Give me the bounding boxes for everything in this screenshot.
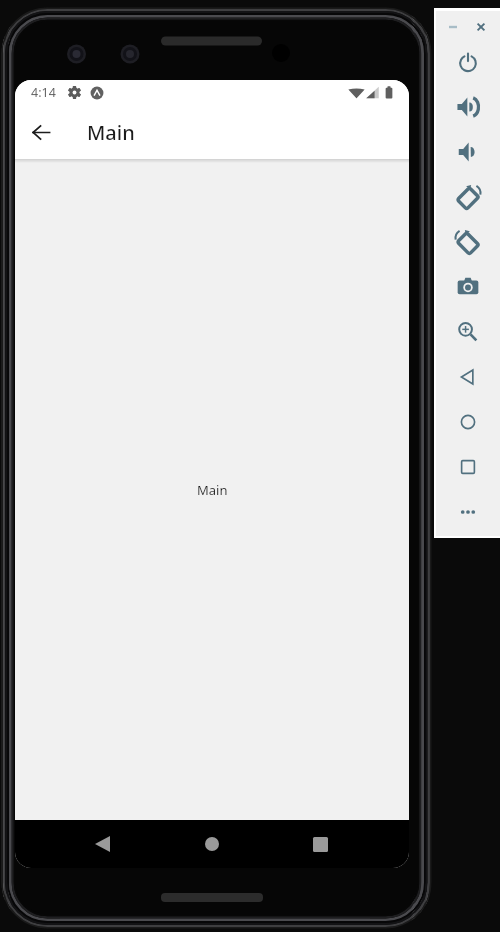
staticText: Main bbox=[87, 119, 135, 146]
button[interactable]: Rotate right bbox=[446, 220, 490, 264]
button[interactable]: Back bbox=[65, 820, 139, 868]
button[interactable]: Minimize bbox=[439, 13, 467, 41]
button[interactable]: Home bbox=[446, 400, 490, 444]
button[interactable]: Take screenshot bbox=[446, 265, 490, 309]
staticText: 4:14 bbox=[31, 84, 56, 101]
button[interactable]: Zoom bbox=[446, 310, 490, 354]
button[interactable]: Navigate up bbox=[23, 114, 60, 151]
button[interactable]: Power bbox=[446, 40, 490, 84]
button[interactable]: Volume down bbox=[446, 130, 490, 174]
button[interactable]: Rotate left bbox=[446, 175, 490, 219]
button[interactable]: Home bbox=[175, 820, 249, 868]
button[interactable]: Back bbox=[446, 355, 490, 399]
button[interactable]: More bbox=[446, 490, 490, 534]
staticText: Main bbox=[197, 481, 228, 499]
button[interactable]: Recent apps bbox=[283, 820, 357, 868]
button[interactable]: Volume up bbox=[446, 85, 490, 129]
button[interactable]: Overview bbox=[446, 445, 490, 489]
button[interactable]: Close bbox=[467, 13, 495, 41]
